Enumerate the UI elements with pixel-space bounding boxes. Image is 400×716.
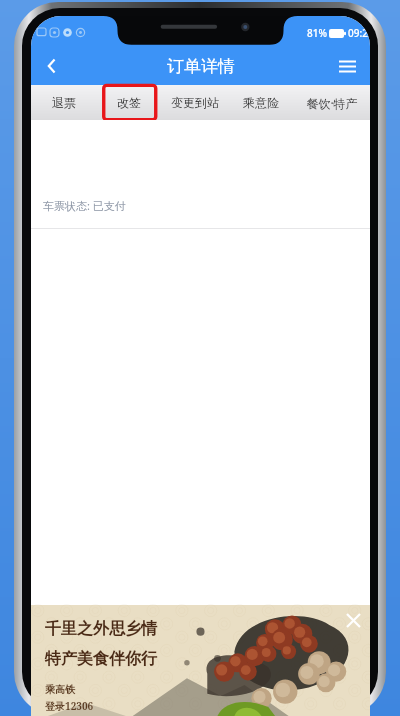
- button[interactable]: 乘意险: [228, 85, 294, 120]
- staticText: 登录12306: [45, 699, 94, 713]
- button[interactable]: 退票: [31, 85, 96, 120]
- button[interactable]: Menu: [330, 49, 364, 83]
- button[interactable]: 餐饮·特产: [294, 85, 370, 120]
- staticText: 乘高铁: [45, 683, 75, 696]
- staticText: 餐饮·特产: [306, 95, 358, 111]
- button[interactable]: 改签: [96, 85, 162, 120]
- staticText: 乘意险: [243, 95, 279, 110]
- staticText: 81%: [307, 26, 327, 40]
- staticText: 09:2: [348, 26, 368, 40]
- staticText: 千里之外思乡情: [45, 619, 157, 639]
- staticText: 退票: [52, 95, 76, 110]
- staticText: 改签: [117, 95, 141, 110]
- staticText: 订单详情: [167, 56, 235, 77]
- button[interactable]: Back: [35, 49, 69, 83]
- button[interactable]: Close ad: [340, 607, 366, 633]
- staticText: 变更到站: [171, 95, 219, 110]
- button[interactable]: 千里之外思乡情: [31, 605, 370, 716]
- staticText: 特产美食伴你行: [45, 649, 157, 669]
- button[interactable]: 变更到站: [162, 85, 228, 120]
- staticText: 车票状态: 已支付: [43, 198, 126, 213]
